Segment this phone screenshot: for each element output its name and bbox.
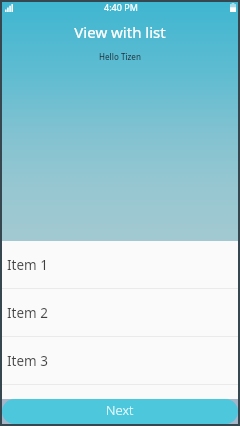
button[interactable]: Item 3: [2, 337, 238, 385]
staticText: View with list: [74, 22, 166, 42]
button[interactable]: Item 2: [2, 289, 238, 337]
staticText: Next: [106, 401, 134, 419]
staticText: Item 1: [7, 256, 48, 274]
staticText: Item 3: [7, 352, 48, 370]
staticText: Item 4: [7, 396, 48, 414]
staticText: 4:40 PM: [104, 1, 138, 13]
other: Battery: [230, 3, 236, 12]
staticText: Item 2: [7, 304, 48, 322]
button[interactable]: Next: [2, 399, 238, 424]
staticText: Hello Tizen: [99, 51, 141, 62]
button[interactable]: Item 1: [2, 241, 238, 289]
other: Signal strength: [5, 4, 13, 12]
button[interactable]: Item 4: [2, 385, 238, 424]
